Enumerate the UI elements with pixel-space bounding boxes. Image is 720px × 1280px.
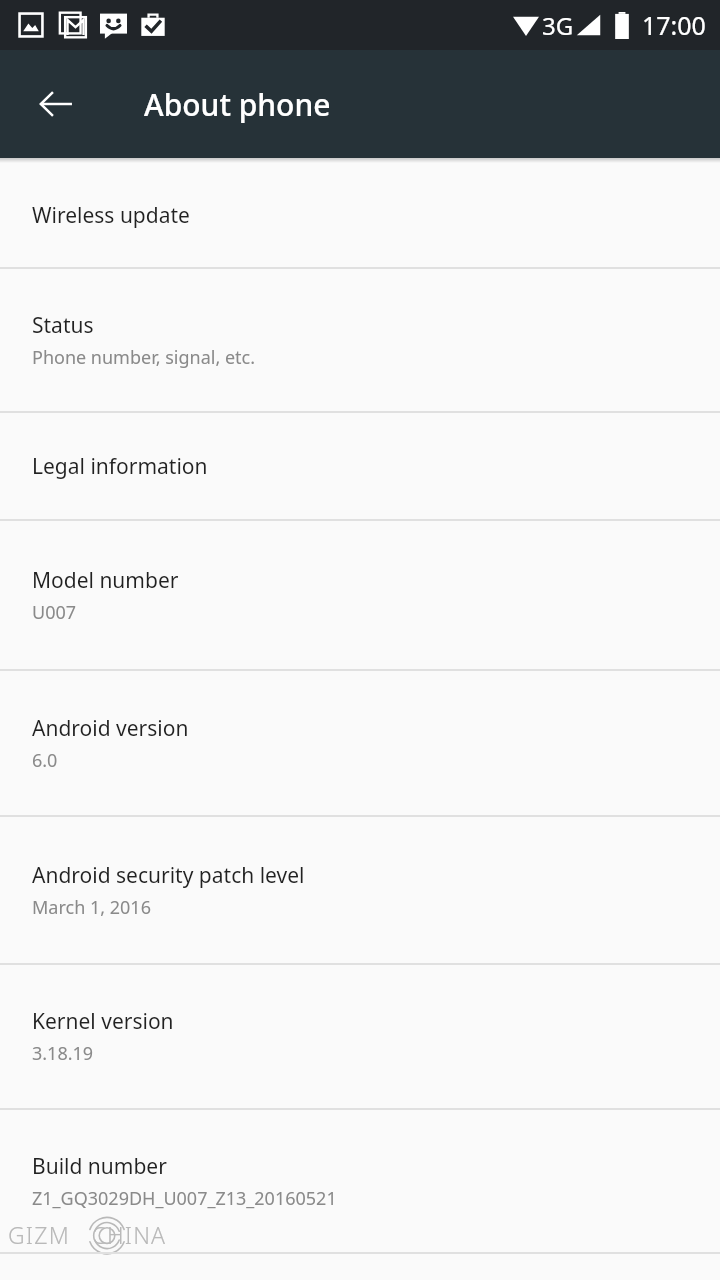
- staticText: Status: [32, 311, 94, 340]
- staticText: 3G: [542, 9, 574, 42]
- staticText: Legal information: [32, 452, 208, 481]
- staticText: 6.0: [32, 748, 58, 773]
- button[interactable]: Legal information: [0, 413, 720, 519]
- staticText: Z1_GQ3029DH_U007_Z13_20160521: [32, 1186, 337, 1211]
- staticText: 17:00: [642, 8, 706, 42]
- button[interactable]: Build number: [0, 1110, 720, 1252]
- button[interactable]: Kernel version: [0, 965, 720, 1108]
- staticText: U007: [32, 600, 77, 625]
- staticText: Kernel version: [32, 1007, 174, 1036]
- button[interactable]: Android version: [0, 671, 720, 815]
- staticText: Android security patch level: [32, 861, 305, 890]
- staticText: Android version: [32, 714, 189, 743]
- staticText: Phone number, signal, etc.: [32, 345, 256, 370]
- staticText: Wireless update: [32, 201, 190, 230]
- button[interactable]: Android security patch level: [0, 817, 720, 963]
- staticText: March 1, 2016: [32, 895, 151, 920]
- staticText: 3.18.19: [32, 1041, 94, 1066]
- button[interactable]: Status: [0, 269, 720, 411]
- button[interactable]: Wireless update: [0, 163, 720, 267]
- staticText: GIZM CHINA: [8, 1219, 167, 1250]
- staticText: About phone: [144, 84, 331, 125]
- button[interactable]: Back: [20, 68, 92, 140]
- button[interactable]: Model number: [0, 521, 720, 669]
- staticText: Model number: [32, 566, 179, 595]
- staticText: Build number: [32, 1152, 167, 1181]
